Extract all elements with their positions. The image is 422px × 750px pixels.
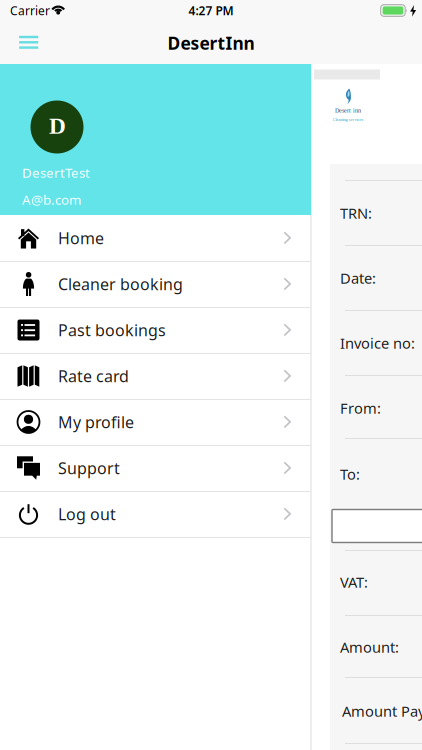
button[interactable]: Home bbox=[0, 215, 311, 261]
staticText: DesertInn bbox=[167, 31, 254, 54]
staticText: Home bbox=[58, 227, 104, 249]
staticText: Desert inn bbox=[335, 107, 361, 114]
staticText: Past bookings bbox=[58, 319, 166, 341]
staticText: Support bbox=[58, 457, 120, 479]
staticText: To: bbox=[340, 464, 360, 484]
staticText: Carrier bbox=[10, 2, 50, 18]
staticText: Amount Payable: bbox=[342, 701, 422, 721]
button[interactable]: Log out bbox=[0, 491, 311, 537]
button[interactable]: Past bookings bbox=[0, 307, 311, 353]
button[interactable]: Menu bbox=[10, 28, 47, 57]
staticText: D bbox=[49, 113, 66, 139]
button[interactable]: My profile bbox=[0, 399, 311, 445]
staticText: Date: bbox=[340, 268, 376, 288]
staticText: Cleaning services bbox=[332, 117, 363, 122]
button[interactable]: Support bbox=[0, 445, 311, 491]
staticText: DesertTest bbox=[22, 164, 90, 181]
staticText: A@b.com bbox=[22, 191, 81, 208]
staticText: From: bbox=[340, 398, 381, 418]
staticText: Rate card bbox=[58, 365, 129, 387]
staticText: My profile bbox=[58, 411, 134, 433]
staticText: VAT: bbox=[340, 572, 368, 592]
staticText: Amount: bbox=[340, 637, 399, 657]
staticText: Cleaner booking bbox=[58, 273, 183, 295]
staticText: Invoice no: bbox=[340, 333, 415, 353]
button[interactable]: Rate card bbox=[0, 353, 311, 399]
staticText: 4:27 PM bbox=[188, 2, 233, 18]
button[interactable]: Cleaner booking bbox=[0, 261, 311, 307]
staticText: Log out bbox=[58, 503, 116, 525]
staticText: TRN: bbox=[340, 203, 372, 223]
